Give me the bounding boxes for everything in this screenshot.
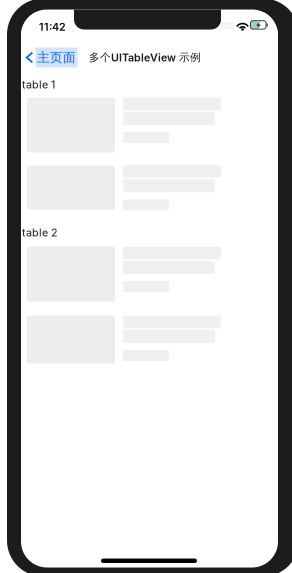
staticText: 11:42 <box>39 20 66 33</box>
button[interactable]: 主页面 <box>21 42 77 72</box>
button[interactable] <box>21 165 278 209</box>
staticText: 主页面 <box>37 49 76 65</box>
staticText: table 1 <box>22 78 55 91</box>
staticText: table 2 <box>22 226 58 239</box>
button[interactable] <box>21 97 278 152</box>
button[interactable] <box>21 315 278 363</box>
staticText: 多个UITableView 示例 <box>89 51 201 64</box>
button[interactable] <box>21 246 278 301</box>
